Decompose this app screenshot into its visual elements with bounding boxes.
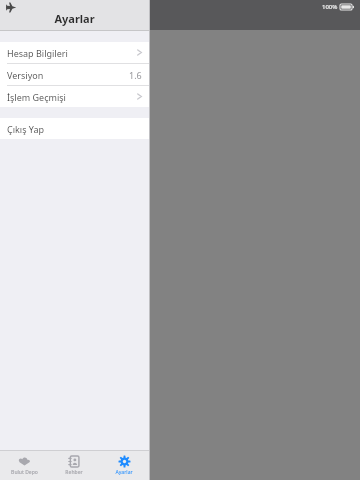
staticText: Hesap Bilgileri bbox=[7, 47, 68, 59]
staticText: Rehber bbox=[65, 469, 83, 476]
button[interactable]: Ayarlar bbox=[99, 451, 149, 480]
staticText: 100% bbox=[322, 3, 338, 11]
staticText: İşlem Geçmişi bbox=[7, 91, 66, 103]
button[interactable]: Bulut Depo bbox=[0, 451, 49, 480]
staticText: 1.6 bbox=[129, 69, 142, 81]
button[interactable]: Çıkış Yap bbox=[0, 118, 149, 139]
button[interactable]: Hesap Bilgileri bbox=[0, 42, 149, 63]
staticText: Ayarlar bbox=[54, 11, 95, 26]
staticText: Ayarlar bbox=[115, 469, 133, 476]
staticText: Versiyon bbox=[7, 69, 44, 81]
staticText: Çıkış Yap bbox=[7, 123, 45, 135]
button[interactable]: Versiyon bbox=[0, 64, 149, 85]
button[interactable]: Rehber bbox=[49, 451, 99, 480]
button[interactable]: İşlem Geçmişi bbox=[0, 86, 149, 107]
staticText: Bulut Depo bbox=[11, 469, 38, 476]
